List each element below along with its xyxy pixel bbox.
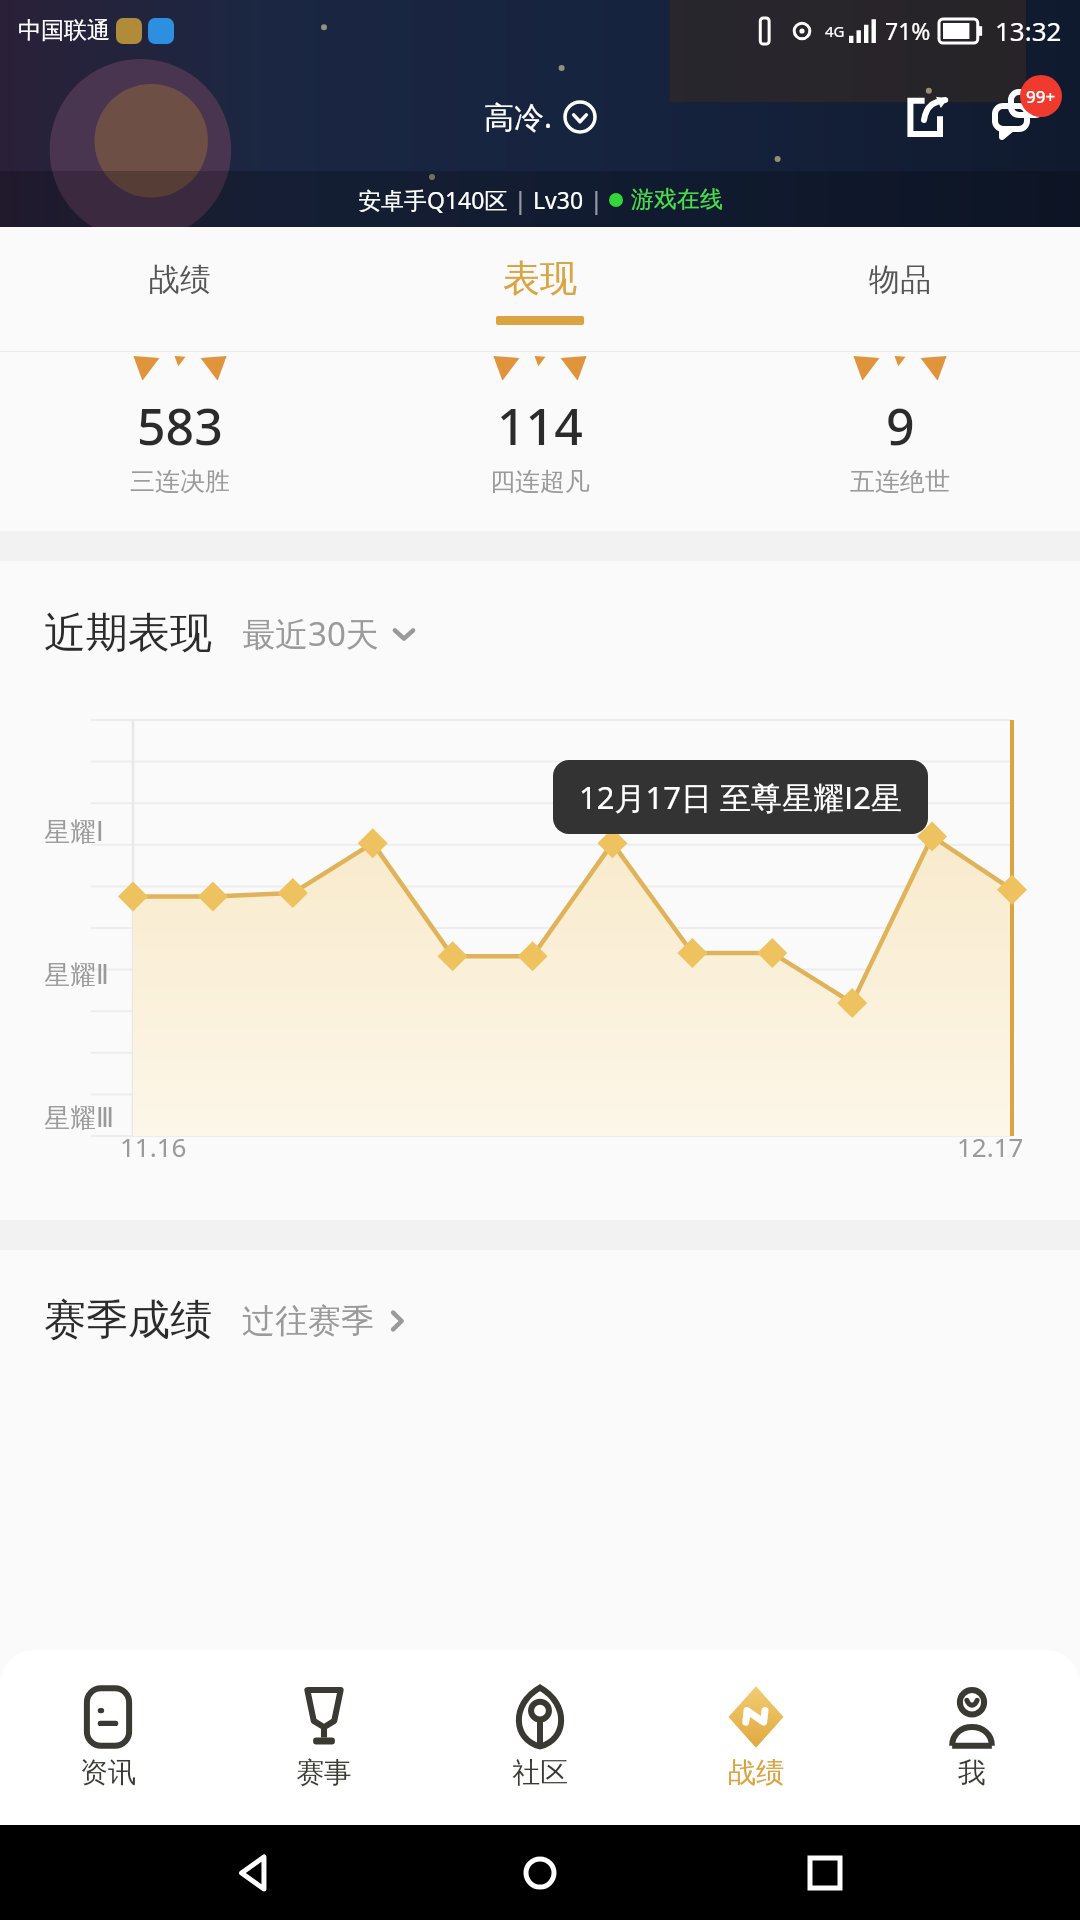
staticText: 安卓手Q140区	[358, 184, 508, 215]
staticText: 71%	[885, 15, 931, 46]
staticText: 赛事	[296, 1755, 352, 1790]
staticText: 星耀Ⅱ	[44, 959, 109, 992]
staticText: 中国联通	[18, 16, 110, 45]
button[interactable]: 我	[864, 1650, 1080, 1825]
staticText: |	[508, 184, 533, 215]
button[interactable]: 战绩	[0, 227, 360, 352]
staticText: 12.17	[957, 1129, 1024, 1164]
staticText: 583	[137, 392, 223, 460]
staticText: 五连绝世	[850, 466, 950, 497]
staticText: 战绩	[728, 1755, 784, 1790]
staticText: 99+	[1026, 85, 1056, 108]
button[interactable]: 物品	[720, 227, 1080, 352]
staticText: Lv30	[533, 184, 584, 215]
staticText: 三连决胜	[130, 466, 230, 497]
button[interactable]: Back	[225, 1843, 285, 1903]
button[interactable]: 表现	[360, 227, 720, 352]
staticText: 四连超凡	[490, 466, 590, 497]
staticText: 资讯	[80, 1755, 136, 1790]
button[interactable]: Recents	[795, 1843, 855, 1903]
staticText: 4G	[825, 21, 845, 41]
staticText: 9	[886, 392, 915, 460]
button[interactable]: 114	[360, 356, 720, 497]
staticText: 12月17日 至尊星耀Ⅰ2星	[579, 776, 902, 818]
button[interactable]: 社区	[432, 1650, 648, 1825]
button[interactable]: 12月17日 至尊星耀Ⅰ2星	[553, 760, 928, 834]
staticText: 游戏在线	[631, 185, 723, 214]
button[interactable]: 高冷.	[484, 96, 597, 137]
staticText: 114	[497, 392, 583, 460]
button[interactable]: 583	[0, 356, 360, 497]
button[interactable]: 资讯	[0, 1650, 216, 1825]
button[interactable]: 9	[720, 356, 1080, 497]
button[interactable]: Home	[510, 1843, 570, 1903]
staticText: 战绩	[149, 260, 211, 299]
staticText: 星耀Ⅰ	[44, 816, 104, 849]
staticText: 我	[958, 1755, 986, 1790]
button[interactable]: 赛事	[216, 1650, 432, 1825]
button[interactable]: 战绩	[648, 1650, 864, 1825]
staticText: 近期表现	[44, 607, 212, 660]
staticText: |	[584, 184, 609, 215]
staticText: 星耀Ⅲ	[44, 1102, 114, 1135]
staticText: 高冷.	[484, 96, 553, 137]
staticText: 表现	[503, 255, 577, 302]
staticText: 11.16	[120, 1129, 187, 1164]
staticText: 赛季成绩	[44, 1294, 212, 1347]
staticText: 过往赛季	[242, 1300, 374, 1342]
staticText: 13:32	[995, 13, 1062, 48]
button[interactable]: 最近30天	[242, 611, 417, 656]
staticText: 最近30天	[242, 611, 379, 656]
staticText: 社区	[512, 1755, 568, 1790]
button[interactable]: 过往赛季	[242, 1300, 410, 1342]
staticText: 物品	[869, 260, 931, 299]
button[interactable]: Share	[898, 86, 958, 146]
button[interactable]: Messages	[986, 83, 1052, 149]
